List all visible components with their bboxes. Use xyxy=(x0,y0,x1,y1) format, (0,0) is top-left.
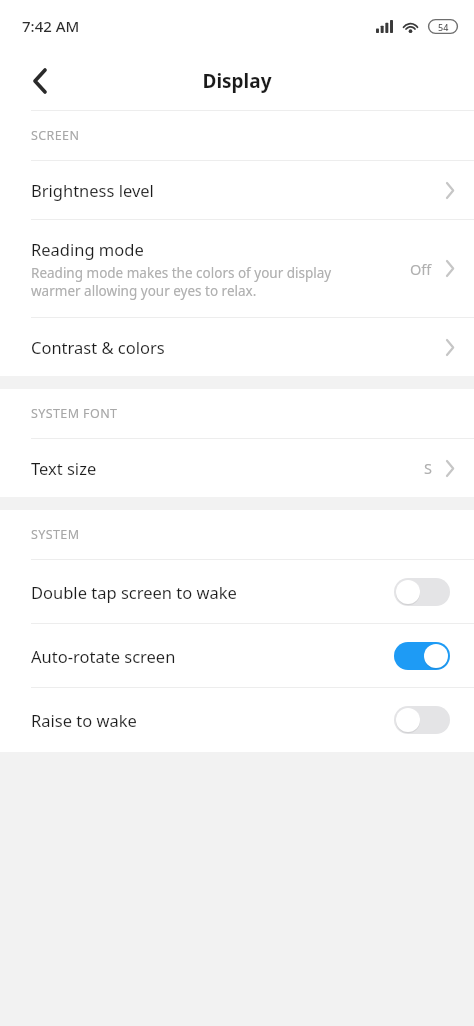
staticText: S xyxy=(424,458,432,478)
button[interactable]: Raise to wake xyxy=(0,688,474,751)
staticText: Display xyxy=(202,68,272,94)
staticText: Contrast & colors xyxy=(31,336,446,358)
staticText: Auto-rotate screen xyxy=(31,645,394,667)
staticText: Off xyxy=(410,259,432,279)
button[interactable]: Reading mode xyxy=(0,220,474,317)
button[interactable]: Contrast & colors xyxy=(0,318,474,376)
staticText: Text size xyxy=(31,457,424,479)
button[interactable]: Double tap screen to wake xyxy=(0,560,474,623)
staticText: SCREEN xyxy=(31,127,80,144)
button[interactable]: Text size xyxy=(0,439,474,497)
staticText: SYSTEM FONT xyxy=(31,405,118,422)
staticText: SYSTEM xyxy=(31,526,80,543)
staticText: Brightness level xyxy=(31,179,446,201)
staticText: Reading mode xyxy=(31,238,144,260)
staticText: Raise to wake xyxy=(31,709,394,731)
staticText: 54 xyxy=(438,21,449,33)
staticText: Double tap screen to wake xyxy=(31,581,394,603)
button[interactable]: Brightness level xyxy=(0,161,474,219)
staticText: 7:42 AM xyxy=(22,16,80,36)
button[interactable]: Back xyxy=(16,57,64,105)
button[interactable]: Auto-rotate screen xyxy=(0,624,474,687)
staticText: Reading mode makes the colors of your di… xyxy=(31,264,332,300)
